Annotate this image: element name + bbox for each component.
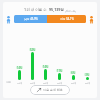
staticText: 50대 — [71, 82, 76, 85]
staticText: 95,139점 — [49, 7, 64, 12]
staticText: 20대 — [30, 82, 35, 85]
staticText: 여성 54.1% — [60, 17, 74, 21]
staticText: 60대 — [85, 82, 90, 85]
other: 성별 — [88, 16, 95, 23]
other: 순위 예측 — [37, 88, 41, 92]
button[interactable]: 11% — [52, 69, 66, 85]
button[interactable]: 14% — [39, 65, 52, 85]
button[interactable]: 순위 예측 — [30, 85, 70, 95]
other: 성별 — [5, 16, 12, 23]
staticText: 연령 — [6, 81, 11, 84]
staticText: 3% — [85, 73, 89, 76]
staticText: 40대 — [57, 82, 62, 85]
staticText: 14% — [17, 66, 22, 69]
button[interactable]: 52% — [26, 48, 39, 85]
button[interactable]: 6% — [66, 71, 80, 85]
staticText: 1위 내 이름 수 — [24, 7, 47, 12]
staticText: 6% — [71, 71, 75, 74]
staticText: 10대 — [17, 82, 22, 85]
staticText: 52% — [30, 48, 35, 51]
button[interactable]: 남성 45.9% — [14, 15, 86, 23]
button[interactable]: 3% — [80, 73, 94, 85]
staticText: 다음 순위 예측 — [43, 88, 63, 92]
staticText: 남성 45.9% — [24, 17, 38, 21]
staticText: (최근 7일) — [65, 9, 76, 12]
staticText: 14% — [43, 65, 48, 68]
button[interactable]: 14% — [13, 66, 26, 85]
staticText: 30대 — [43, 82, 48, 85]
staticText: 11% — [57, 69, 62, 72]
